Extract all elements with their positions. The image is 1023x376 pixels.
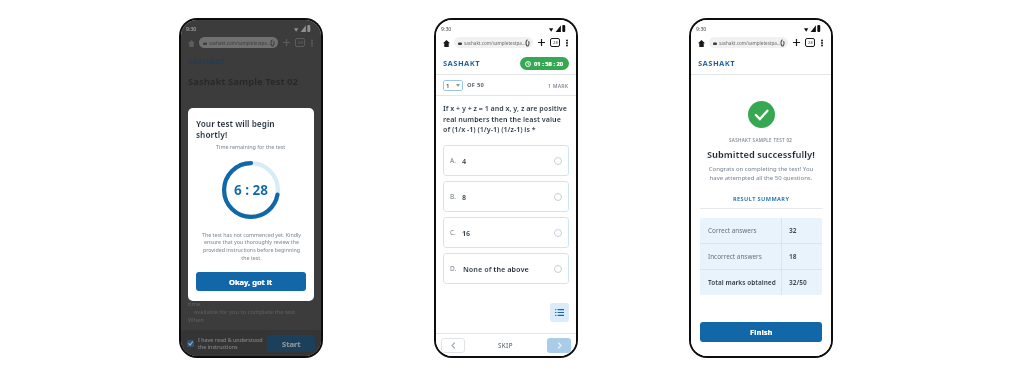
button[interactable]: More options (818, 39, 826, 47)
staticText: Time remaining for the test (216, 143, 286, 150)
button[interactable]: Okay, got it (196, 272, 306, 291)
staticText: 32/50 (789, 278, 807, 287)
staticText: Correct answers (708, 226, 757, 235)
staticText: sashakt.com/sampletestpa... (209, 40, 271, 46)
button[interactable]: sashakt.com/sampletestpa... (203, 37, 274, 48)
button[interactable]: Start (267, 335, 315, 352)
button[interactable]: sashakt.com/sampletestpa... (713, 37, 784, 48)
button[interactable]: New tab (537, 38, 546, 47)
button[interactable]: 01 : 58 : 20 (525, 57, 564, 70)
button[interactable]: Previous (441, 338, 465, 353)
staticText: sashakt.com/sampletestpa... (464, 40, 526, 46)
button[interactable]: C. (443, 217, 569, 248)
button[interactable]: sashakt.com/sampletestpa... (458, 37, 529, 48)
staticText: SKIP (498, 341, 513, 349)
staticText: Start (282, 339, 301, 349)
staticText: Submitted successfully! (707, 148, 815, 161)
button[interactable]: Reload (271, 40, 274, 46)
staticText: 3. Will not allow to submit without atte… (188, 255, 313, 271)
button[interactable]: A. (443, 145, 569, 176)
staticText: The test has not commenced yet. Kindly e… (200, 231, 303, 262)
button[interactable]: SKIP (492, 335, 519, 355)
staticText: 2. Must be finished in a single attempt.… (188, 234, 294, 250)
staticText: 28 (808, 40, 813, 46)
staticText: 32 (789, 226, 797, 235)
staticText: Finish (750, 327, 773, 337)
staticText: If x + y + z = 1 and x, y, z are positiv… (443, 104, 569, 134)
button[interactable]: Question list (550, 303, 569, 322)
staticText: 28 (298, 40, 303, 46)
button[interactable]: Tabs (805, 38, 815, 47)
staticText: 9:30 (441, 25, 452, 32)
staticText: 1 (446, 82, 450, 90)
staticText: sashakt.com/sampletestpa... (719, 40, 781, 46)
staticText: RESULT SUMMARY (733, 195, 790, 203)
staticText: 1 MARK (548, 82, 569, 89)
button[interactable]: New tab (282, 38, 291, 47)
button[interactable]: Home (186, 38, 196, 48)
staticText: Congrats on completing the test! You hav… (705, 165, 817, 182)
staticText: OF 50 (467, 81, 484, 89)
staticText: I have read & understood the instruction… (198, 336, 263, 350)
staticText: Your test will begin shortly! (196, 118, 306, 140)
staticText: 01 : 58 : 20 (534, 60, 564, 68)
button[interactable]: Home (696, 38, 706, 48)
staticText: 18 (789, 252, 797, 261)
staticText: 8 (462, 192, 467, 202)
staticText: Total marks obtained (708, 278, 776, 287)
staticText: B. (450, 192, 456, 201)
staticText: SASHAKT (188, 56, 226, 66)
button[interactable]: 1 (443, 80, 463, 91)
staticText: C. (450, 228, 456, 237)
button[interactable]: New tab (792, 38, 801, 47)
button[interactable]: More options (563, 39, 571, 47)
staticText: 6 : 28 (234, 181, 268, 199)
staticText: SASHAKT (443, 58, 481, 68)
button[interactable]: Finish (700, 322, 822, 342)
button[interactable]: B. (443, 181, 569, 212)
button[interactable]: Home (441, 38, 451, 48)
button[interactable]: More options (308, 39, 316, 47)
button[interactable]: Tabs (550, 38, 560, 47)
staticText: SASHAKT SAMPLE TEST 02 (729, 137, 793, 143)
staticText: 9:30 (186, 25, 197, 32)
staticText: SASHAKT (698, 58, 736, 68)
button[interactable]: D. (443, 253, 569, 284)
staticText: A. (450, 156, 456, 165)
button[interactable]: Next (547, 338, 571, 353)
staticText: 16 (462, 228, 471, 238)
button[interactable]: Tabs (295, 38, 305, 47)
button[interactable]: Reload (781, 40, 784, 46)
staticText: 28 (553, 40, 558, 46)
staticText: D. (450, 264, 457, 273)
staticText: None of the above (463, 264, 529, 274)
staticText: Sashakt Sample Test 02 (188, 75, 298, 88)
staticText: 9:30 (696, 25, 707, 32)
staticText: Okay, got it (229, 277, 273, 287)
staticText: 4 (462, 156, 467, 166)
button[interactable]: Reload (526, 40, 529, 46)
button[interactable]: I have read and understood (187, 340, 194, 347)
staticText: 4. The countdown timer in the top right … (188, 276, 314, 324)
staticText: Incorrect answers (708, 252, 762, 261)
